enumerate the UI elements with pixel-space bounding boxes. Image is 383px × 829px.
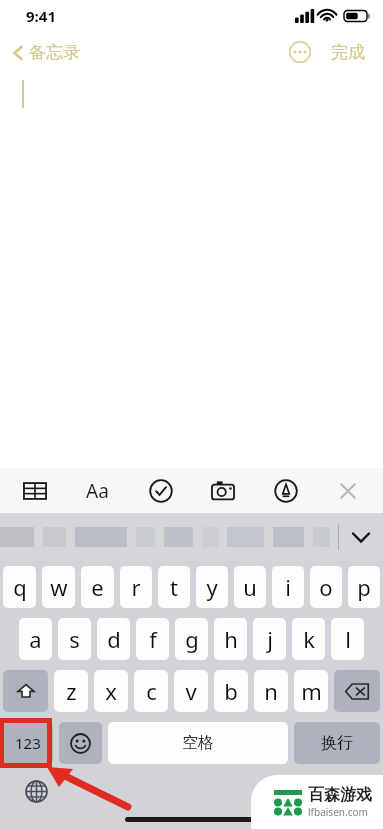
button[interactable]: Close <box>331 474 365 508</box>
button[interactable]: 123 <box>3 722 53 764</box>
staticText: 9:41 <box>26 6 56 26</box>
staticText: 完成 <box>331 42 365 63</box>
button[interactable]: 换行 <box>294 722 380 764</box>
staticText: w <box>50 572 68 602</box>
button[interactable]: d <box>97 618 130 660</box>
button[interactable]: Aa <box>80 472 115 510</box>
button[interactable]: Backspace <box>334 670 380 712</box>
staticText: q <box>13 572 27 602</box>
button[interactable]: Markup <box>269 474 303 508</box>
button[interactable]: 备忘录 <box>8 38 84 67</box>
staticText: a <box>29 624 42 654</box>
staticText: y <box>206 572 218 602</box>
staticText: i <box>285 572 291 602</box>
staticText: j <box>267 624 273 654</box>
button[interactable]: v <box>174 670 208 712</box>
staticText: f <box>149 624 157 654</box>
button[interactable]: s <box>58 618 91 660</box>
button[interactable]: Camera <box>206 474 240 508</box>
button[interactable]: q <box>3 566 36 608</box>
button[interactable]: m <box>294 670 328 712</box>
staticText: g <box>185 624 199 654</box>
button[interactable]: t <box>158 566 190 608</box>
staticText: 换行 <box>321 733 353 753</box>
staticText: 空格 <box>182 733 214 753</box>
staticText: b <box>224 676 238 706</box>
button[interactable]: b <box>214 670 248 712</box>
button[interactable]: n <box>254 670 288 712</box>
staticText: l <box>345 624 351 654</box>
button[interactable]: k <box>292 618 325 660</box>
staticText: h <box>224 624 238 654</box>
button[interactable]: 完成 <box>329 38 367 67</box>
staticText: s <box>69 624 80 654</box>
button[interactable]: g <box>175 618 208 660</box>
button[interactable]: h <box>214 618 247 660</box>
staticText: o <box>319 572 333 602</box>
staticText: z <box>66 676 77 706</box>
button[interactable]: More options <box>285 37 315 67</box>
button[interactable]: r <box>120 566 152 608</box>
staticText: lfbaisen.com <box>308 805 368 819</box>
button[interactable]: l <box>331 618 364 660</box>
button[interactable]: 空格 <box>108 722 288 764</box>
staticText: d <box>107 624 121 654</box>
staticText: n <box>264 676 278 706</box>
staticText: x <box>105 676 117 706</box>
button[interactable]: z <box>54 670 88 712</box>
staticText: 123 <box>15 733 41 753</box>
button[interactable]: i <box>272 566 304 608</box>
button[interactable]: e <box>81 566 114 608</box>
staticText: r <box>131 572 141 602</box>
button[interactable]: Switch keyboard <box>22 777 51 806</box>
staticText: c <box>146 676 157 706</box>
staticText: u <box>243 572 257 602</box>
staticText: v <box>185 676 197 706</box>
staticText: k <box>303 624 315 654</box>
button[interactable]: Table <box>18 474 52 508</box>
staticText: e <box>91 572 104 602</box>
button[interactable]: w <box>42 566 75 608</box>
staticText: Aa <box>86 478 109 504</box>
button[interactable]: Checklist <box>144 474 178 508</box>
button[interactable]: j <box>253 618 286 660</box>
button[interactable]: u <box>234 566 266 608</box>
button[interactable]: a <box>19 618 52 660</box>
button[interactable]: Hide keyboard <box>339 513 383 561</box>
staticText: t <box>170 572 178 602</box>
button[interactable]: f <box>136 618 169 660</box>
button[interactable]: y <box>196 566 228 608</box>
button[interactable]: x <box>94 670 128 712</box>
button[interactable]: Shift <box>3 670 48 712</box>
button[interactable]: c <box>134 670 168 712</box>
staticText: p <box>357 572 371 602</box>
staticText: m <box>301 676 322 706</box>
button[interactable]: o <box>310 566 342 608</box>
staticText: 备忘录 <box>29 42 80 63</box>
button[interactable]: p <box>348 566 380 608</box>
staticText: 百森游戏 <box>308 785 372 805</box>
button[interactable]: Emoji <box>59 722 102 764</box>
